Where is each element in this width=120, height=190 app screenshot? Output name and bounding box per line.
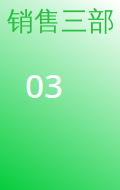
staticText: 销售三部 (7, 5, 115, 38)
staticText: 03 (25, 63, 63, 107)
